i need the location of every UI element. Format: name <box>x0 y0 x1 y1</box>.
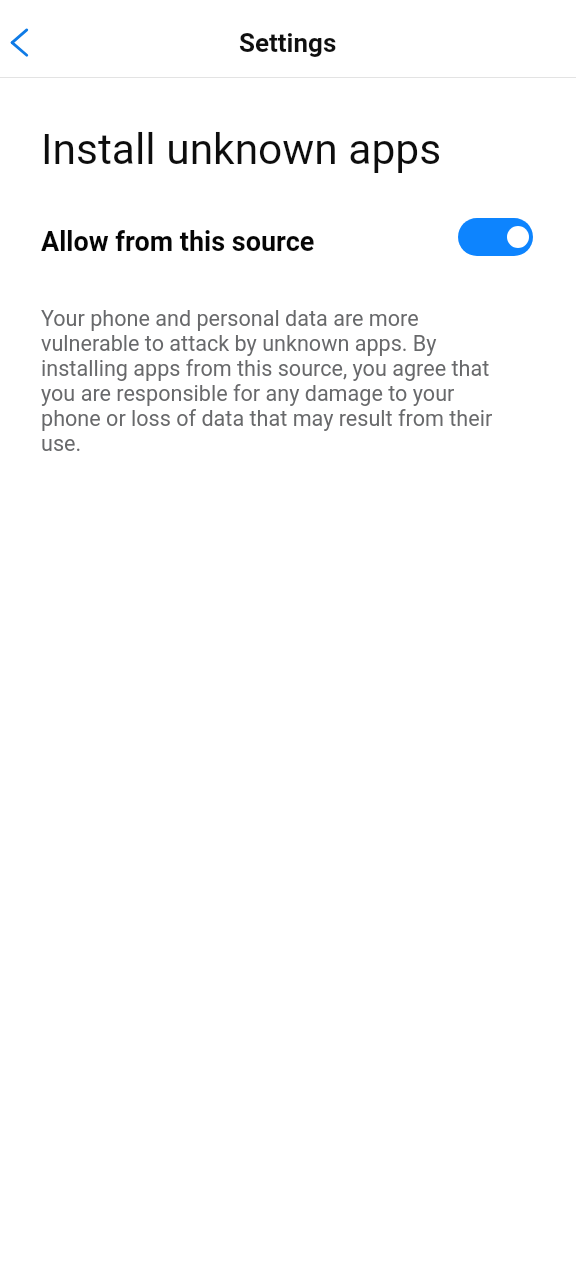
button[interactable]: Allow from this source <box>0 206 576 268</box>
staticText: Your phone and personal data are more vu… <box>41 306 504 456</box>
staticText: Settings <box>239 28 337 58</box>
staticText: Allow from this source <box>41 226 458 258</box>
button[interactable]: Navigate back <box>0 14 52 66</box>
button[interactable]: Allow from this source, on <box>458 218 533 256</box>
staticText: Install unknown apps <box>41 125 442 175</box>
